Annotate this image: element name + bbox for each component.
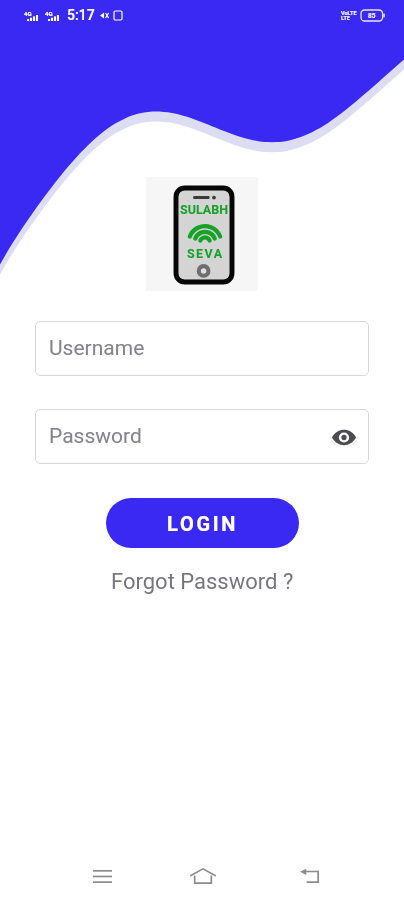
- button[interactable]: Back: [287, 854, 331, 898]
- staticText: SEVA: [187, 246, 224, 261]
- staticText: VoLTE: [341, 10, 357, 16]
- staticText: Username: [49, 336, 145, 361]
- button[interactable]: Recents: [80, 854, 124, 898]
- staticText: 5:17: [67, 7, 95, 23]
- staticText: 85: [368, 12, 376, 20]
- button[interactable]: Forgot Password ?: [107, 565, 298, 599]
- staticText: 4G: [24, 10, 32, 17]
- staticText: Password: [49, 424, 142, 449]
- staticText: 4G: [45, 10, 53, 17]
- staticText: LOGIN: [167, 512, 239, 535]
- button[interactable]: Password: [35, 409, 369, 464]
- staticText: LTE: [341, 15, 350, 21]
- staticText: SULABH: [180, 202, 229, 217]
- button[interactable]: Username: [35, 321, 369, 376]
- button[interactable]: LOGIN: [106, 498, 299, 548]
- button[interactable]: Show password: [329, 422, 359, 452]
- button[interactable]: Home: [181, 854, 225, 898]
